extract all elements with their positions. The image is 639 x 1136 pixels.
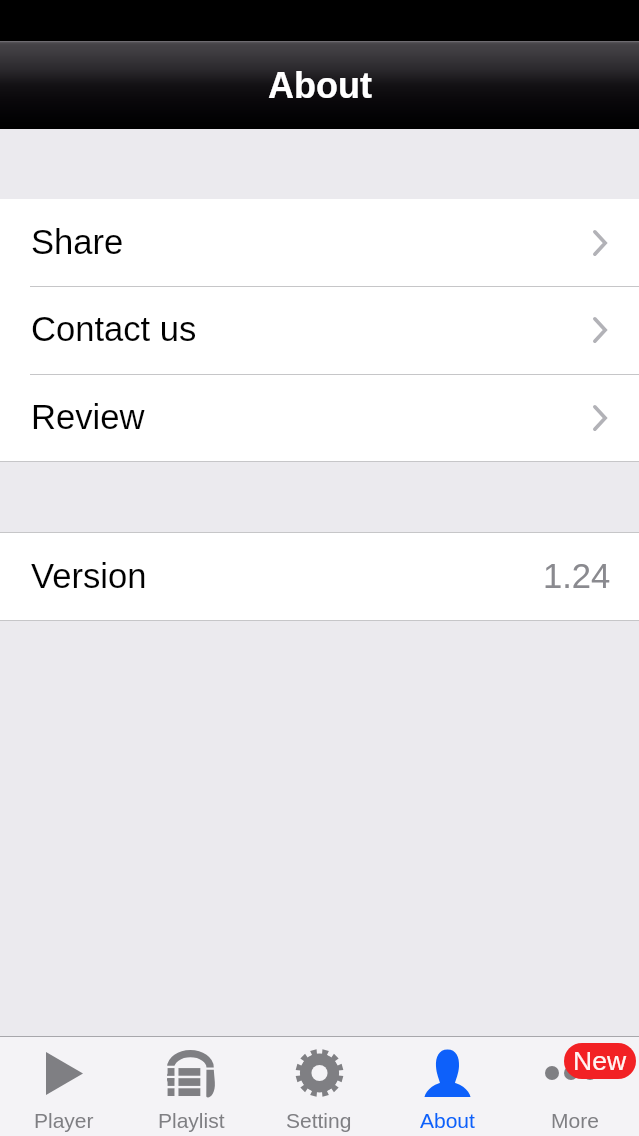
- staticText: Player: [34, 1109, 94, 1132]
- button[interactable]: Setting: [255, 1037, 383, 1136]
- staticText: About: [420, 1109, 475, 1132]
- staticText: Setting: [286, 1109, 352, 1132]
- button[interactable]: Contact us: [0, 286, 639, 373]
- staticText: More: [551, 1109, 599, 1132]
- staticText: Review: [31, 398, 145, 437]
- button[interactable]: Playlist: [127, 1037, 255, 1136]
- button[interactable]: Player: [0, 1037, 127, 1136]
- button[interactable]: More: [511, 1037, 639, 1136]
- button[interactable]: Review: [0, 374, 639, 461]
- staticText: 1.24: [543, 557, 611, 596]
- staticText: About: [268, 65, 372, 105]
- staticText: Share: [31, 223, 124, 262]
- button[interactable]: Share: [0, 199, 639, 286]
- staticText: Version: [31, 557, 147, 596]
- staticText: Playlist: [158, 1109, 225, 1132]
- button[interactable]: About: [383, 1037, 511, 1136]
- staticText: New: [573, 1046, 627, 1076]
- staticText: Contact us: [31, 310, 197, 349]
